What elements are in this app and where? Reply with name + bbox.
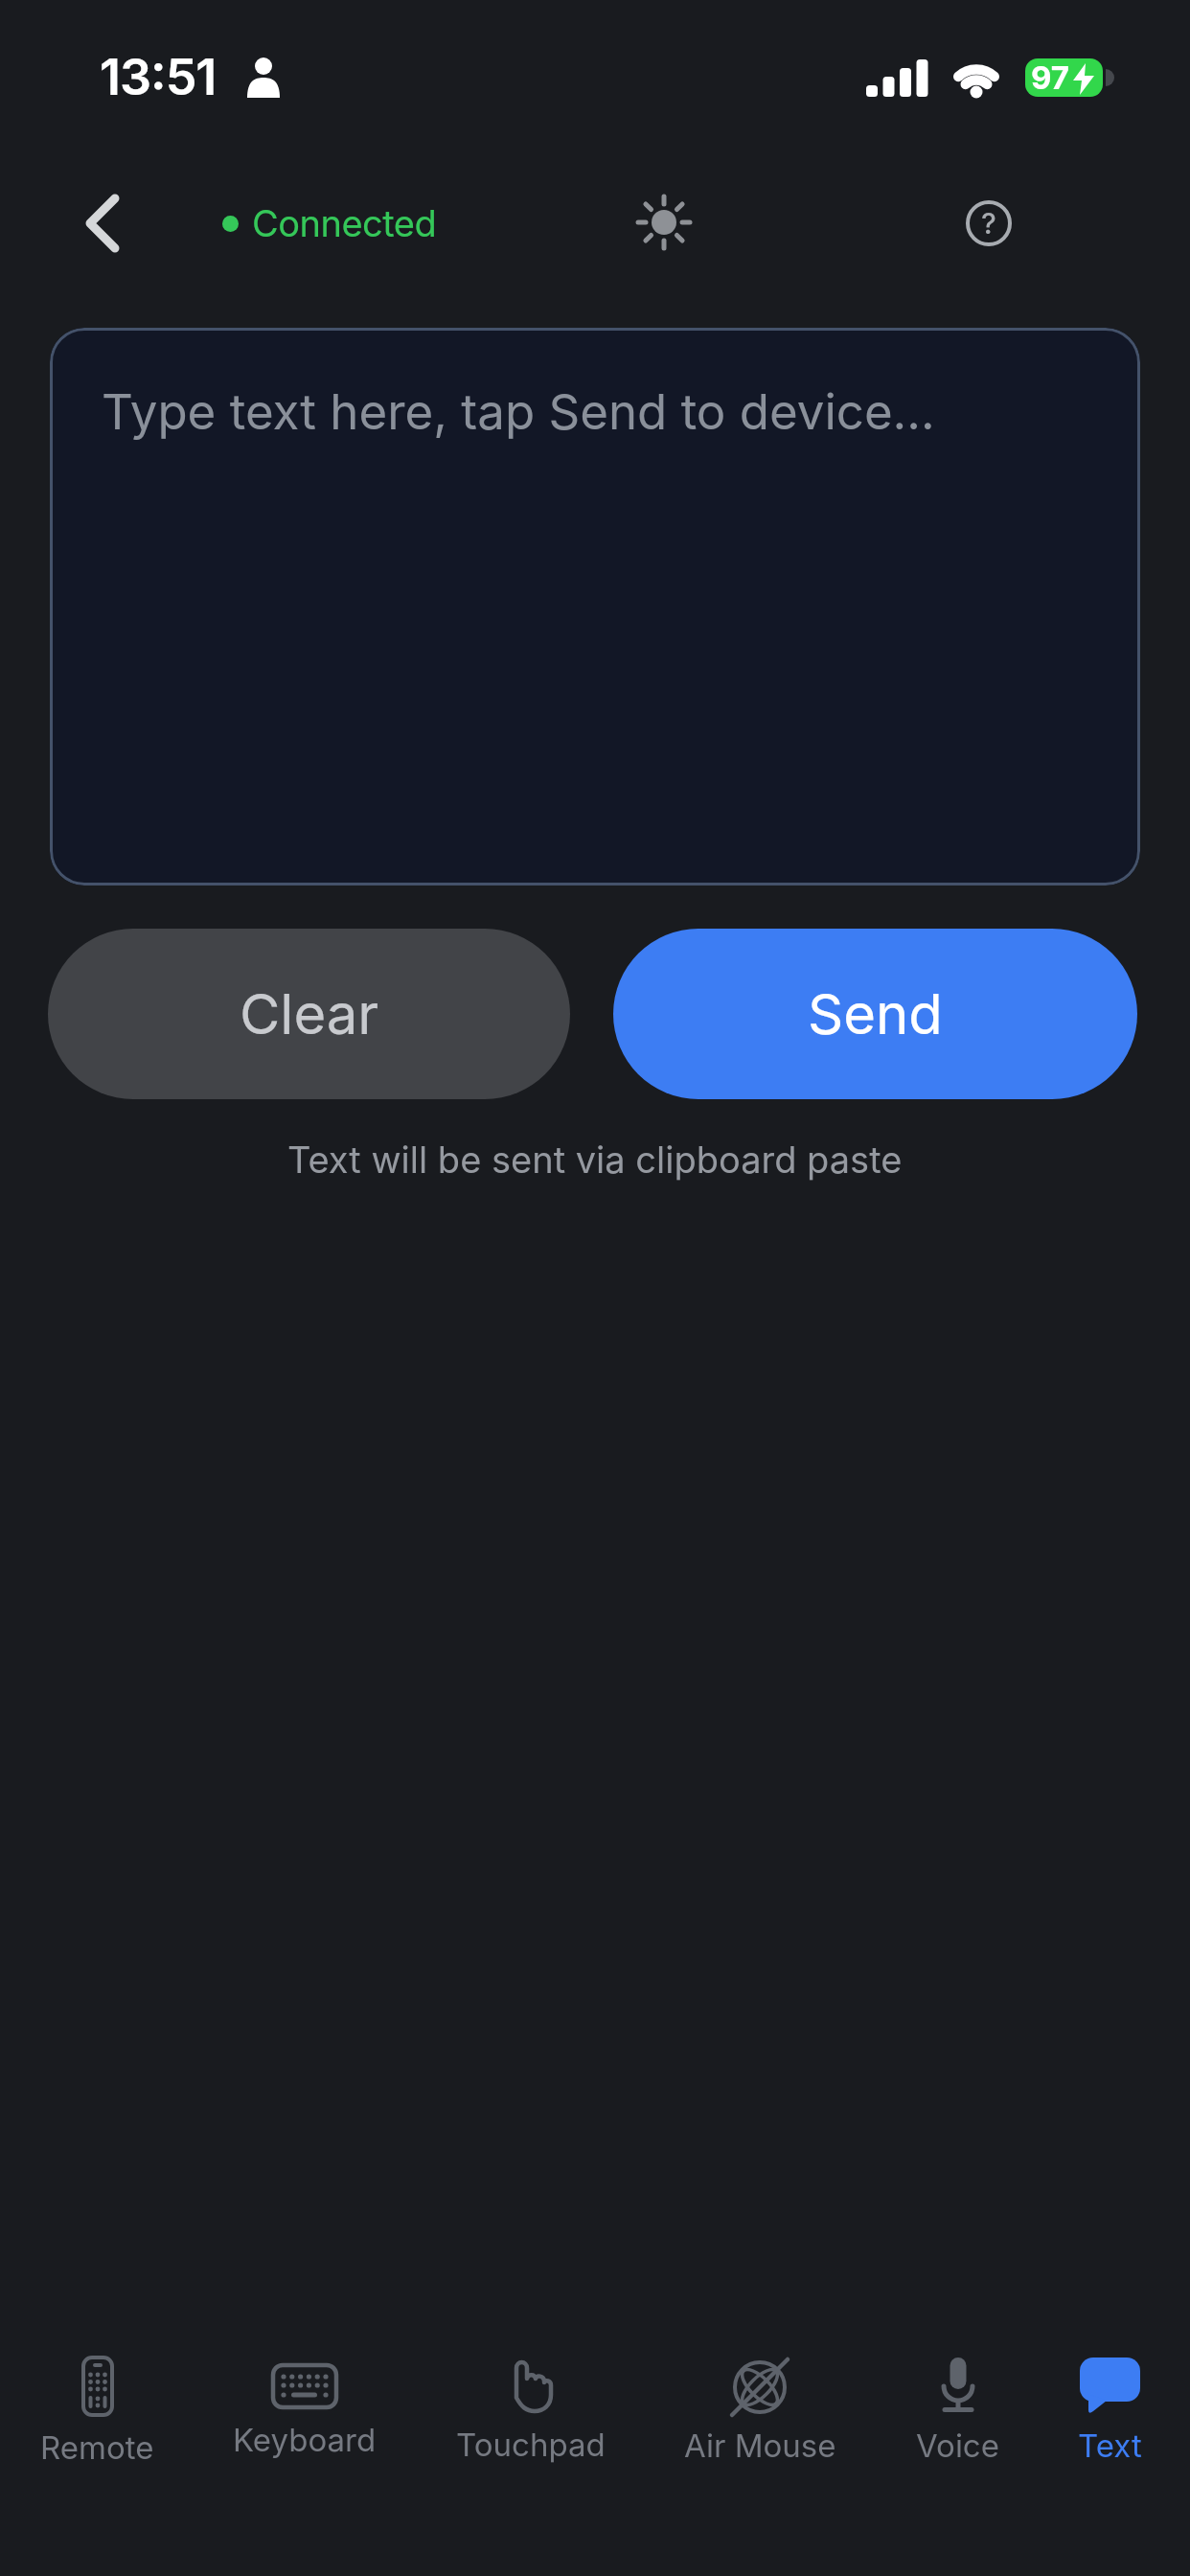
staticText: Remote: [40, 2428, 154, 2467]
button[interactable]: Connected: [222, 197, 437, 249]
button[interactable]: [82, 194, 125, 253]
staticText: ?: [981, 206, 996, 241]
staticText: Keyboard: [233, 2421, 377, 2459]
staticText: 97: [1031, 58, 1069, 97]
button[interactable]: Voice: [916, 2357, 999, 2465]
button[interactable]: Remote: [40, 2356, 154, 2467]
staticText: Clear: [240, 980, 379, 1047]
button[interactable]: [636, 195, 692, 250]
staticText: Text: [1078, 2426, 1142, 2465]
staticText: Touchpad: [456, 2426, 606, 2464]
staticText: Connected: [252, 201, 437, 245]
button[interactable]: Text: [1078, 2357, 1142, 2465]
button[interactable]: Type text here, tap Send to device...: [50, 328, 1140, 885]
button[interactable]: ?: [966, 200, 1012, 246]
staticText: Text will be sent via clipboard paste: [287, 1138, 903, 1182]
staticText: 13:51: [100, 47, 217, 107]
button[interactable]: Keyboard: [233, 2363, 377, 2459]
button[interactable]: Touchpad: [456, 2358, 606, 2464]
button[interactable]: Air Mouse: [684, 2357, 836, 2465]
staticText: Send: [808, 980, 943, 1047]
staticText: Voice: [916, 2426, 999, 2465]
staticText: Type text here, tap Send to device...: [102, 382, 935, 442]
button[interactable]: Send: [613, 929, 1137, 1099]
button[interactable]: Clear: [48, 929, 570, 1099]
staticText: Air Mouse: [684, 2426, 836, 2465]
